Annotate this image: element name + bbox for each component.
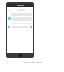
button[interactable]: Conversation header (7, 4, 33, 7)
button[interactable]: Attach (8, 26, 10, 28)
button[interactable]: Send (30, 26, 32, 28)
button[interactable]: Sender avatar (8, 17, 11, 20)
button[interactable]: Conversation header (6, 2, 34, 58)
